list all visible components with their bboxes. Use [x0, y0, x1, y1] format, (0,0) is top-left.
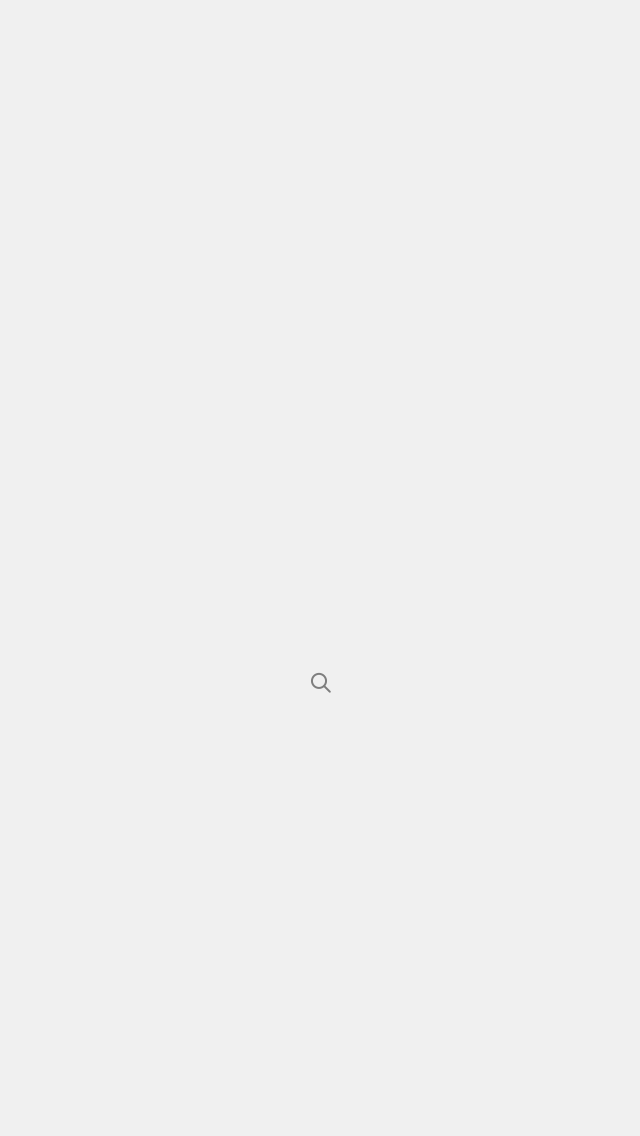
button[interactable]: Search — [306, 668, 336, 698]
